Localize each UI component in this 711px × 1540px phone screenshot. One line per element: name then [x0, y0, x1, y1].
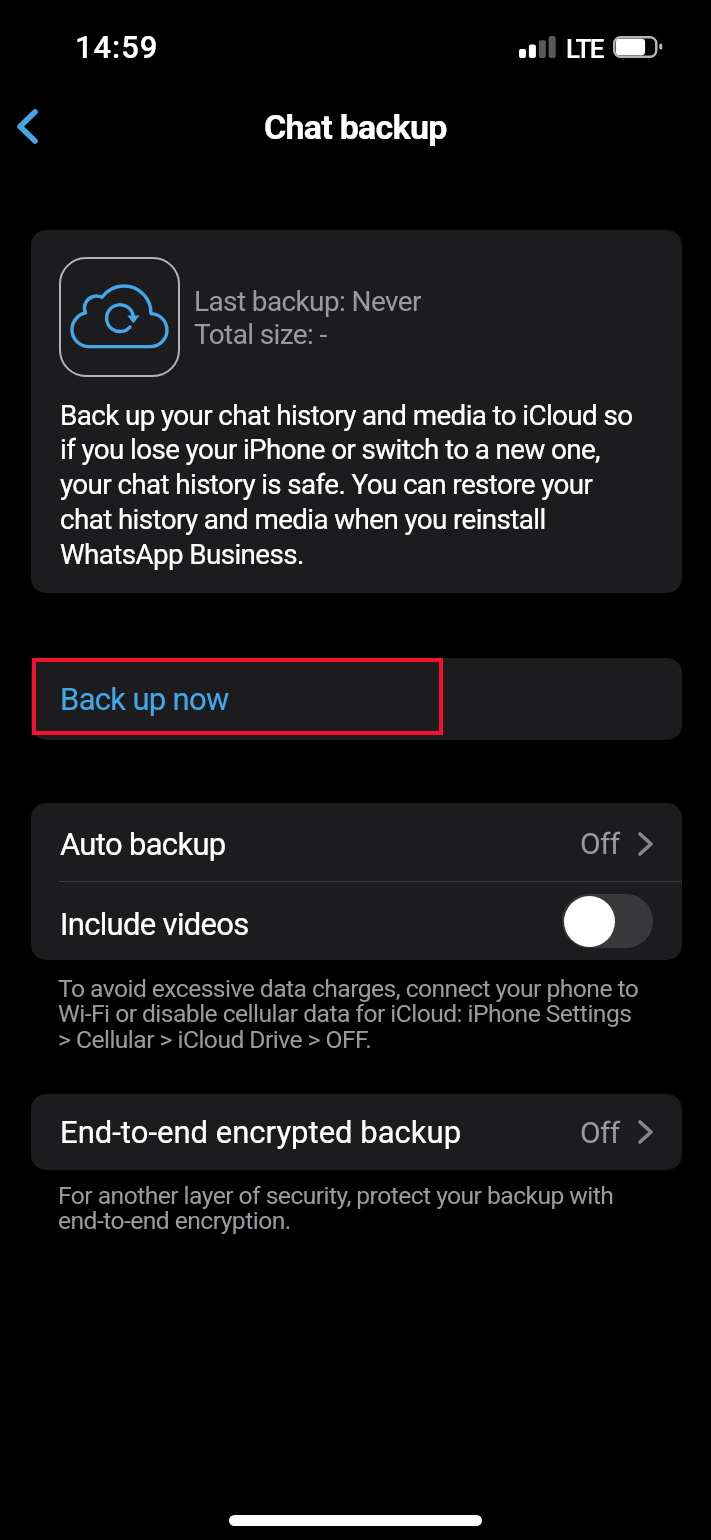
- button[interactable]: Include videos: [31, 882, 682, 960]
- staticText: Back up now: [60, 681, 229, 717]
- staticText: Include videos: [60, 906, 249, 942]
- button[interactable]: Include videos toggle: [562, 894, 653, 948]
- button[interactable]: End-to-end encrypted backup: [31, 1094, 682, 1170]
- staticText: Last backup: Never: [194, 285, 421, 318]
- staticText: For another layer of security, protect y…: [58, 1181, 614, 1235]
- staticText: Auto backup: [60, 826, 226, 862]
- staticText: End-to-end encrypted backup: [60, 1114, 462, 1150]
- staticText: To avoid excessive data charges, connect…: [58, 974, 639, 1054]
- staticText: Off: [580, 1115, 620, 1150]
- staticText: Total size: -: [194, 318, 327, 351]
- staticText: 14:59: [75, 29, 159, 65]
- staticText: Off: [580, 826, 620, 861]
- button[interactable]: Back up now: [31, 658, 682, 740]
- button[interactable]: Back: [0, 98, 55, 154]
- staticText: Back up your chat history and media to i…: [60, 399, 633, 571]
- button[interactable]: Auto backup: [31, 803, 682, 881]
- staticText: LTE: [566, 34, 604, 64]
- staticText: Chat backup: [264, 107, 447, 147]
